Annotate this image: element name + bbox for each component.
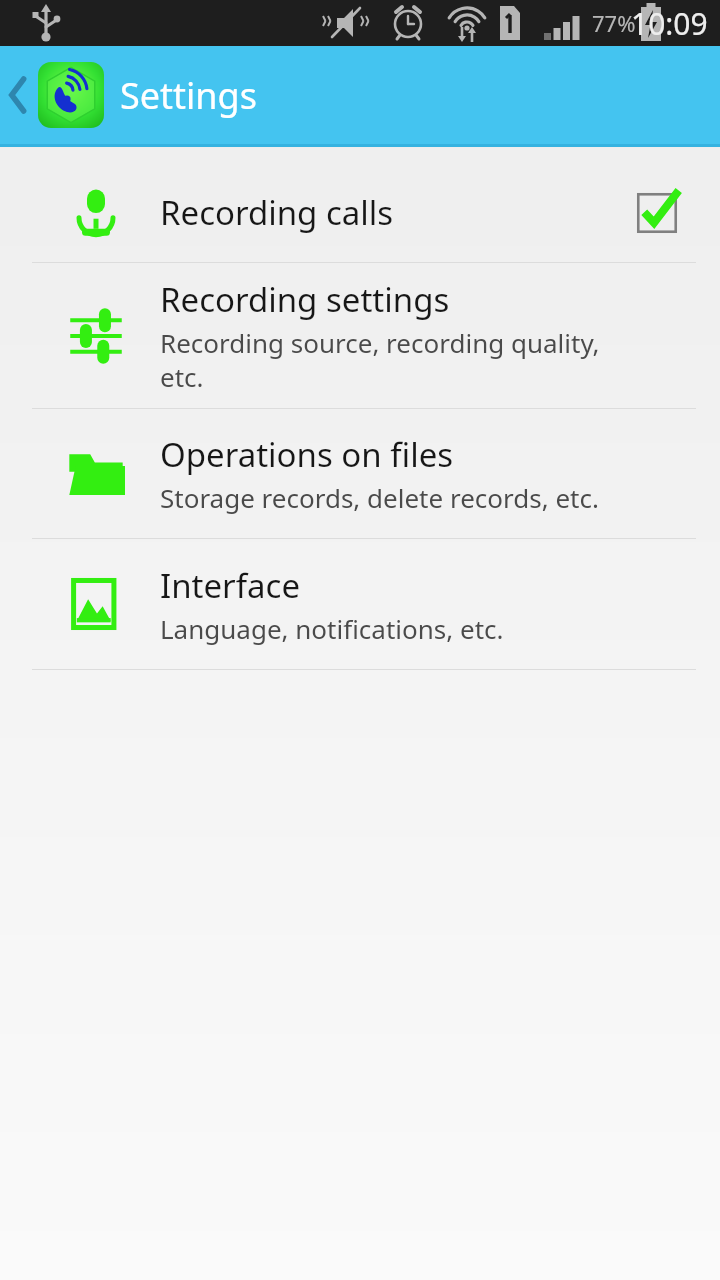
staticText: Language, notifications, etc. [160,611,504,646]
staticText: 10:09 [631,3,708,44]
staticText: Storage records, delete records, etc. [160,480,599,515]
button[interactable]: Operations on files [0,409,720,538]
staticText: Recording calls [160,190,394,235]
button[interactable]: Back [0,46,34,144]
staticText: Operations on files [160,432,454,477]
button[interactable]: Interface [0,539,720,669]
staticText: Settings [120,71,257,120]
button[interactable]: Recording settings [0,263,720,408]
staticText: Recording settings [160,277,450,322]
staticText: 77% [592,8,636,38]
staticText: Recording source, recording quality, etc… [160,325,600,395]
button[interactable]: Recording calls [0,162,720,262]
staticText: Interface [160,563,301,608]
